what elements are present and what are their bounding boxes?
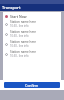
button[interactable]: Station name here xyxy=(5,39,59,49)
staticText: Station name here xyxy=(10,50,36,54)
staticText: Start Now xyxy=(10,14,27,19)
staticText: Station name here xyxy=(10,30,36,34)
staticText: Transport xyxy=(2,5,21,10)
button[interactable]: Station name here xyxy=(5,19,59,29)
staticText: Station name here xyxy=(10,40,36,44)
staticText: 10:30 - line info xyxy=(10,44,29,48)
button[interactable]: Station name here xyxy=(5,29,59,39)
staticText: Station name here xyxy=(10,20,36,24)
button[interactable]: Station name here xyxy=(5,49,59,59)
staticText: 10:30 - line info xyxy=(10,54,29,58)
staticText: 10:30 - line info xyxy=(10,34,29,38)
button[interactable]: Confirm xyxy=(4,82,60,88)
staticText: Confirm xyxy=(25,83,39,88)
staticText: 10:30 - line info xyxy=(10,24,29,28)
